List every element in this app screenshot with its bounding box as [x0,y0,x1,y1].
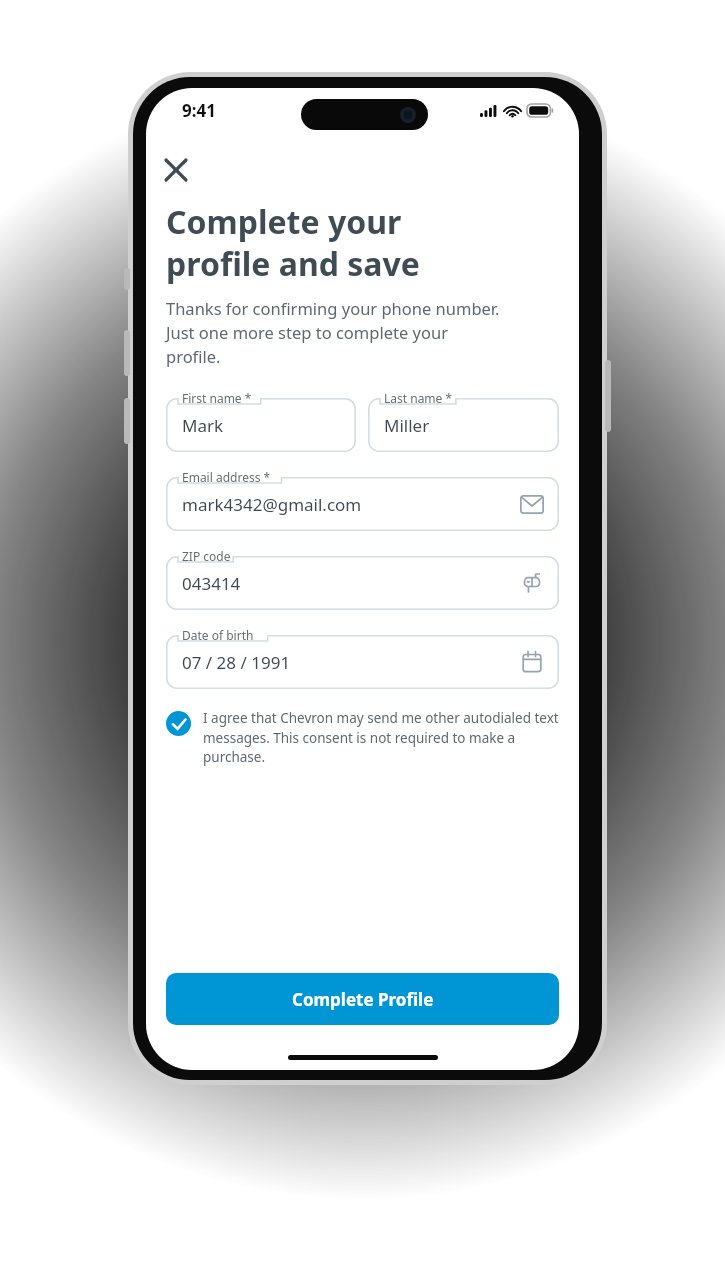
other: Email [520,495,544,514]
other: Date of birth [521,651,543,673]
button[interactable]: Close [154,148,198,192]
staticText: Date of birth [182,627,254,643]
staticText: mark4342@gmail.com [182,493,362,516]
staticText: Complete Profile [292,988,434,1011]
staticText: ZIP code [182,548,231,564]
staticText: Last name * [384,390,453,406]
staticText: Email address * [182,469,271,485]
button[interactable]: I agree that Chevron may send me other a… [166,709,559,766]
staticText: Miller [384,414,430,437]
staticText: 9:41 [182,99,216,122]
staticText: 043414 [182,572,241,595]
staticText: Mark [182,414,224,437]
button[interactable]: Complete Profile [166,973,559,1025]
staticText: Thanks for confirming your phone number.… [166,297,500,368]
staticText: I agree that Chevron may send me other a… [203,709,559,766]
staticText: First name * [182,390,252,406]
other: ZIP code [521,572,543,594]
staticText: Complete your profile and save [166,200,420,285]
staticText: 07 / 28 / 1991 [182,651,291,674]
